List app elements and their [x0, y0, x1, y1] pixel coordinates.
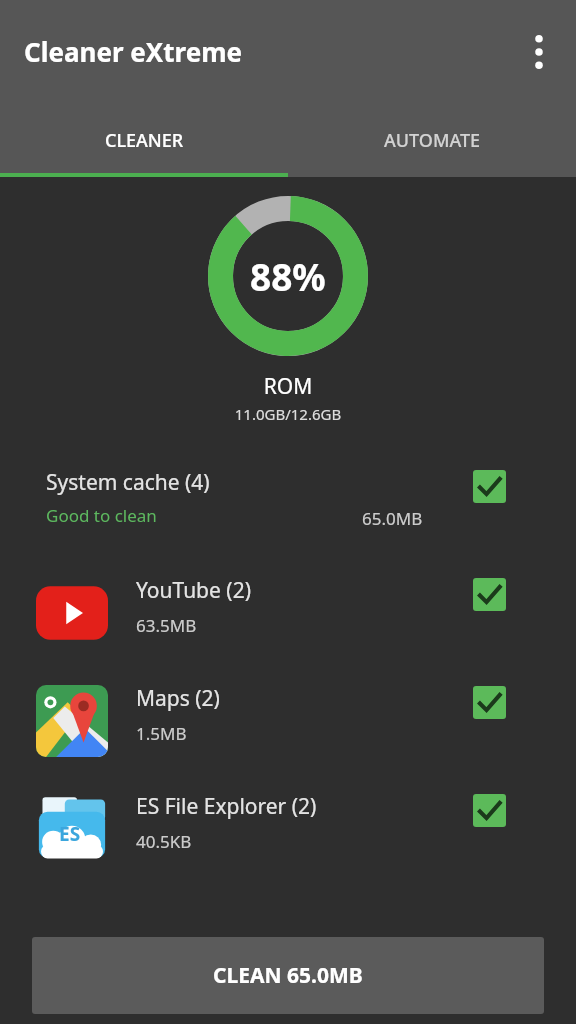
button[interactable]: System cache (4) — [0, 456, 576, 564]
staticText: 65.0MB — [362, 507, 423, 530]
button[interactable]: More options — [521, 34, 557, 70]
staticText: Cleaner eXtreme — [24, 34, 243, 69]
button[interactable]: Selected, toggle item — [473, 578, 506, 611]
staticText: 63.5MB — [136, 614, 197, 637]
staticText: 40.5KB — [136, 830, 192, 853]
staticText: Good to clean — [46, 504, 157, 527]
button[interactable]: AUTOMATE — [288, 103, 576, 177]
staticText: YouTube (2) — [136, 576, 251, 605]
staticText: AUTOMATE — [384, 128, 481, 153]
button[interactable]: YouTube (2) — [0, 564, 576, 672]
staticText: ES — [59, 821, 81, 847]
button[interactable]: CLEANER — [0, 103, 288, 177]
button[interactable]: Selected, toggle item — [473, 794, 506, 827]
button[interactable]: Selected, toggle item — [473, 686, 506, 719]
staticText: 88% — [250, 251, 326, 301]
staticText: ROM — [0, 372, 576, 401]
button[interactable]: Maps (2) — [0, 672, 576, 780]
staticText: Maps (2) — [136, 684, 220, 713]
staticText: System cache (4) — [46, 468, 210, 497]
staticText: 11.0GB/12.6GB — [0, 404, 576, 424]
staticText: ES File Explorer (2) — [136, 792, 317, 821]
button[interactable]: Selected, toggle item — [473, 470, 506, 503]
button[interactable]: ES — [0, 780, 576, 888]
button[interactable]: CLEAN 65.0MB — [32, 937, 544, 1014]
staticText: CLEAN 65.0MB — [213, 961, 363, 990]
staticText: CLEANER — [105, 128, 184, 153]
staticText: 1.5MB — [136, 722, 187, 745]
